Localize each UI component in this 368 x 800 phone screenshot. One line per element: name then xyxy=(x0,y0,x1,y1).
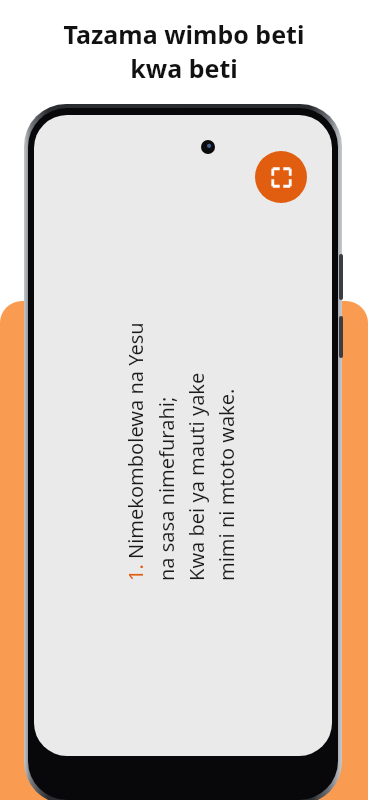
staticText: Tazama wimbo beti kwa beti xyxy=(24,17,344,97)
button[interactable]: Exit fullscreen xyxy=(255,151,307,203)
staticText: 1. Nimekombolewa na Yesu na sasa nimefur… xyxy=(122,322,239,581)
